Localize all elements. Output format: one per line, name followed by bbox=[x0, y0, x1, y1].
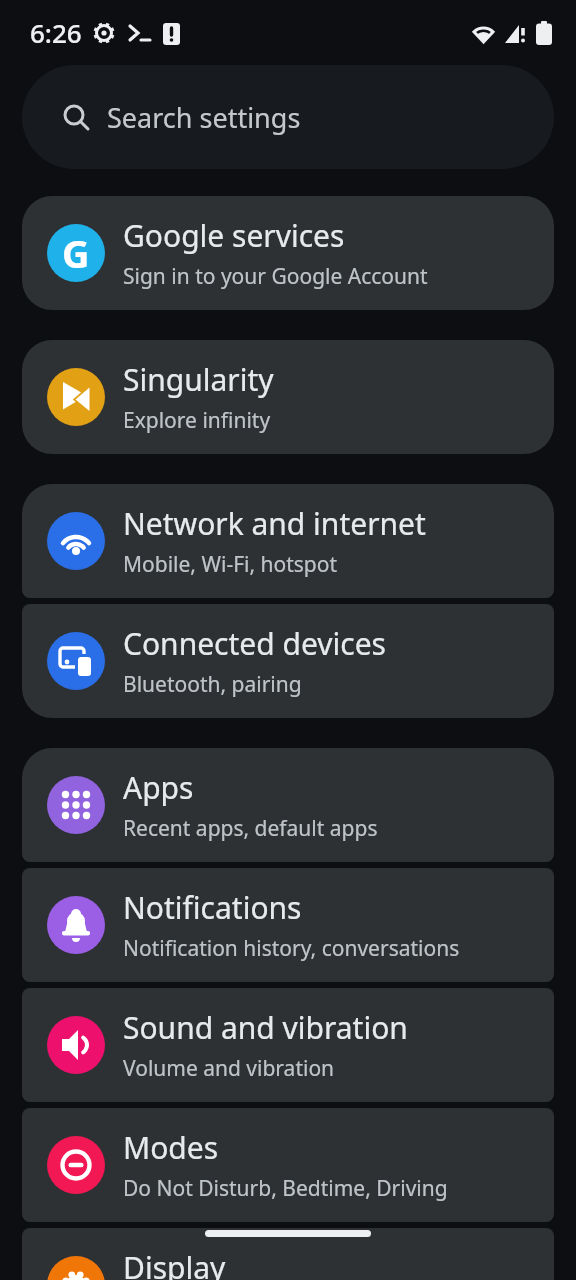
staticText: Search settings bbox=[107, 99, 301, 136]
staticText: Notifications bbox=[123, 887, 302, 928]
staticText: 6:26 bbox=[30, 15, 82, 50]
staticText: Connected devices bbox=[123, 623, 386, 664]
staticText: Sign in to your Google Account bbox=[123, 262, 428, 291]
staticText: Volume and vibration bbox=[123, 1054, 335, 1083]
staticText: Singularity bbox=[123, 359, 274, 400]
button[interactable]: Search settings bbox=[22, 65, 554, 169]
staticText: Notification history, conversations bbox=[123, 934, 460, 963]
staticText: Sound and vibration bbox=[123, 1007, 408, 1048]
staticText: Recent apps, default apps bbox=[123, 814, 378, 843]
button[interactable]: Sound and vibration bbox=[22, 988, 554, 1102]
button[interactable]: Notifications bbox=[22, 868, 554, 982]
staticText: Google services bbox=[123, 215, 345, 256]
button[interactable]: Connected devices bbox=[22, 604, 554, 718]
staticText: Display bbox=[123, 1247, 226, 1280]
staticText: G bbox=[62, 227, 90, 279]
staticText: Modes bbox=[123, 1127, 219, 1168]
staticText: Do Not Disturb, Bedtime, Driving bbox=[123, 1174, 448, 1203]
button[interactable]: G bbox=[22, 196, 554, 310]
button[interactable]: Apps bbox=[22, 748, 554, 862]
staticText: Mobile, Wi-Fi, hotspot bbox=[123, 550, 338, 579]
staticText: Bluetooth, pairing bbox=[123, 670, 302, 699]
button[interactable]: Network and internet bbox=[22, 484, 554, 598]
staticText: Network and internet bbox=[123, 503, 426, 544]
button[interactable]: Display bbox=[22, 1228, 554, 1280]
staticText: Explore infinity bbox=[123, 406, 271, 435]
staticText: Apps bbox=[123, 767, 194, 808]
button[interactable]: Singularity bbox=[22, 340, 554, 454]
button[interactable]: Modes bbox=[22, 1108, 554, 1222]
